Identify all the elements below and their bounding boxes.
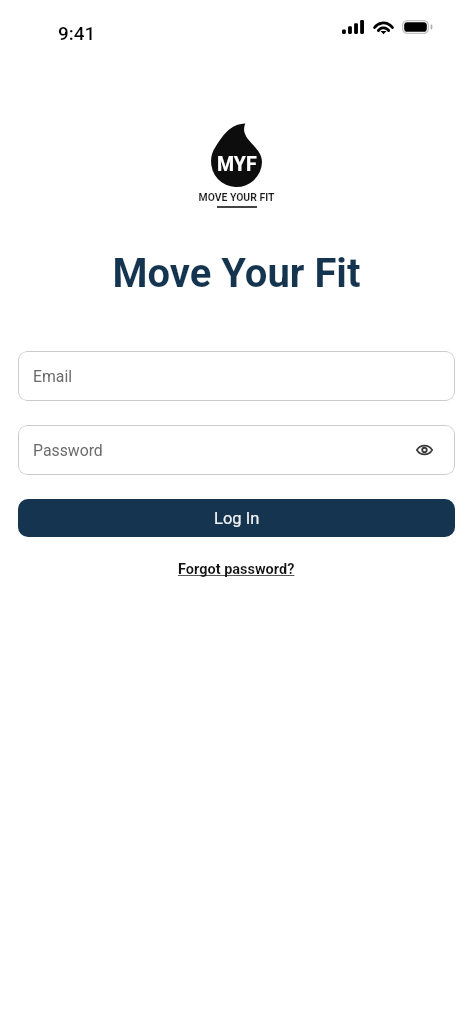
other: Battery <box>402 20 433 34</box>
staticText: MYF <box>217 153 257 176</box>
staticText: Move Your Fit <box>0 250 473 297</box>
staticText: Password <box>33 441 103 460</box>
other: Cellular signal <box>342 20 364 34</box>
button[interactable]: Email <box>18 351 455 401</box>
staticText: Email <box>33 367 73 386</box>
staticText: MOVE YOUR FIT <box>0 191 473 203</box>
staticText: 9:41 <box>58 22 96 44</box>
button[interactable]: Show password <box>407 433 441 467</box>
staticText: Log In <box>214 509 260 528</box>
button[interactable]: Password <box>18 425 455 475</box>
other: Wi-Fi <box>374 20 393 34</box>
button[interactable]: Log In <box>18 499 455 537</box>
button[interactable]: Forgot password? <box>172 558 301 581</box>
